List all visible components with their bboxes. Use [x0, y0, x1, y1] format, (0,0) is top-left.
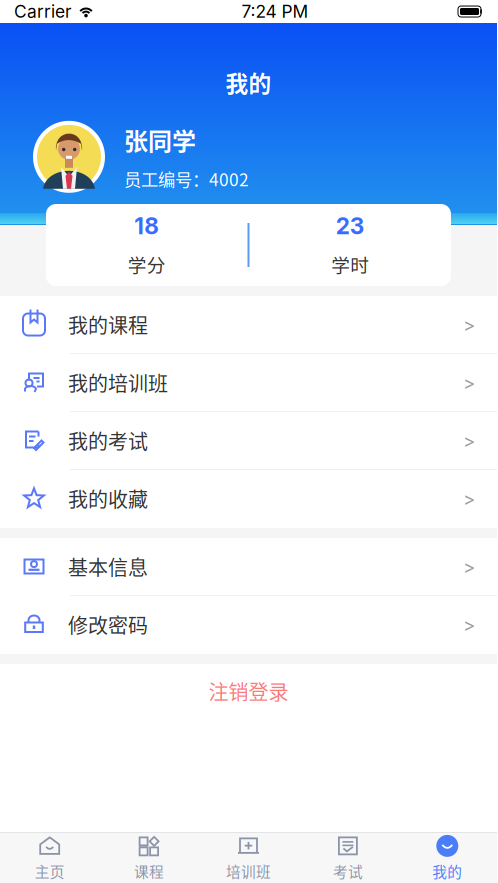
staticText: 员工编号：4002: [124, 166, 249, 191]
staticText: 我的: [432, 860, 462, 882]
staticText: >: [463, 613, 475, 636]
staticText: 主页: [35, 860, 65, 882]
staticText: 考试: [333, 860, 363, 882]
staticText: >: [463, 371, 475, 394]
staticText: 注销登录: [208, 676, 288, 705]
staticText: >: [463, 313, 475, 336]
staticText: >: [463, 555, 475, 578]
staticText: 修改密码: [68, 610, 148, 639]
staticText: 我的考试: [68, 426, 148, 455]
staticText: 我的: [225, 66, 271, 99]
staticText: 课程: [134, 860, 164, 882]
staticText: 学分: [128, 251, 166, 278]
button[interactable]: 考试: [298, 833, 398, 883]
staticText: >: [463, 429, 475, 452]
staticText: 培训班: [226, 860, 271, 882]
staticText: 我的收藏: [68, 484, 148, 513]
button[interactable]: 我的考试: [0, 412, 497, 470]
button[interactable]: 课程: [99, 833, 199, 883]
button[interactable]: 修改密码: [0, 596, 497, 654]
staticText: 我的课程: [68, 310, 148, 339]
staticText: [72, 0, 78, 26]
staticText: 23: [336, 212, 365, 240]
staticText: >: [463, 487, 475, 510]
button[interactable]: 主页: [0, 833, 99, 883]
button[interactable]: 我的课程: [0, 296, 497, 354]
staticText: 基本信息: [68, 552, 148, 581]
staticText: Carrier: [14, 1, 72, 22]
staticText: 7:24 PM: [241, 1, 308, 22]
staticText: 张同学: [124, 122, 196, 157]
staticText: 学时: [331, 251, 369, 278]
button[interactable]: 我的收藏: [0, 470, 497, 528]
button[interactable]: 培训班: [199, 833, 298, 883]
button[interactable]: 注销登录: [2, 664, 495, 718]
button[interactable]: 我的: [398, 833, 497, 883]
button[interactable]: 我的培训班: [0, 354, 497, 412]
button[interactable]: 基本信息: [0, 538, 497, 596]
staticText: 我的培训班: [68, 368, 168, 397]
staticText: 18: [134, 212, 159, 240]
